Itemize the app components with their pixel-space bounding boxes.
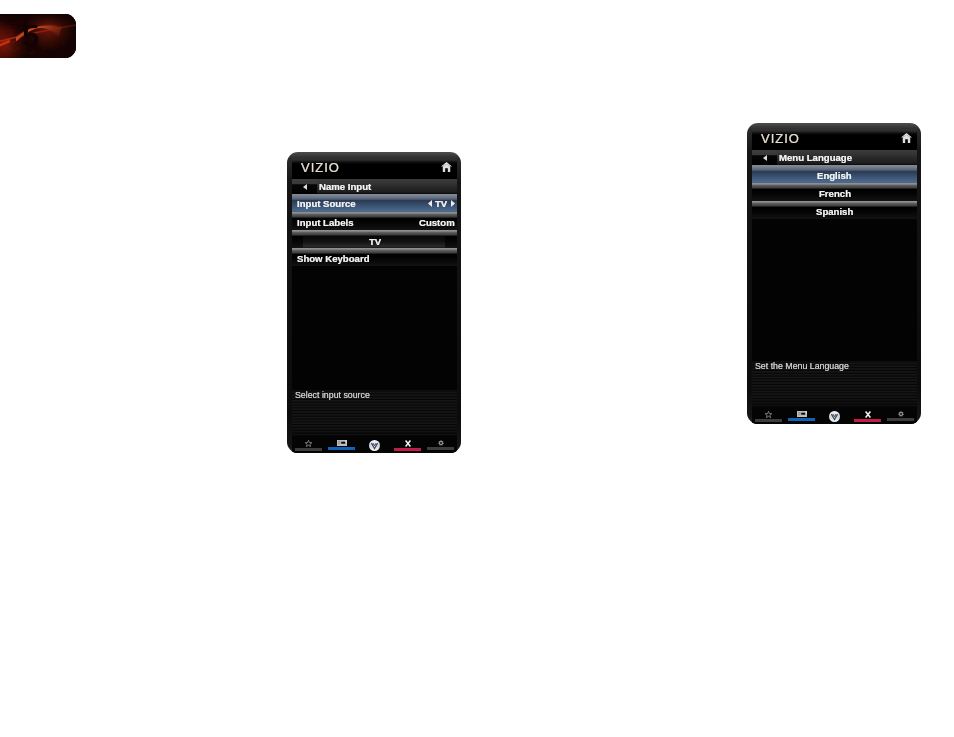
staticText: French: [819, 188, 851, 199]
button[interactable]: Favorites: [292, 436, 325, 453]
button[interactable]: Favorites: [752, 407, 785, 424]
staticText: Spanish: [816, 206, 854, 217]
staticText: Input Source: [297, 198, 356, 209]
button[interactable]: Close: [391, 436, 424, 453]
button[interactable]: Spanish: [752, 207, 917, 219]
button[interactable]: Home: [440, 160, 453, 173]
staticText: Show Keyboard: [297, 253, 370, 264]
staticText: 5: [22, 19, 40, 54]
staticText: Name Input: [319, 181, 372, 192]
button[interactable]: Settings: [884, 407, 917, 424]
staticText: VIZIO: [761, 131, 800, 146]
button[interactable]: Settings: [424, 436, 457, 453]
staticText: Set the Menu Language: [755, 361, 849, 371]
button[interactable]: Close: [851, 407, 884, 424]
staticText: TV: [435, 198, 448, 209]
staticText: Menu Language: [779, 152, 853, 163]
button[interactable]: French: [752, 189, 917, 201]
staticText: VIZIO: [301, 160, 340, 175]
button[interactable]: Input Labels: [292, 218, 457, 230]
staticText: English: [817, 170, 852, 181]
button[interactable]: VIZIO menu: [818, 407, 851, 424]
staticText: Select input source: [295, 390, 370, 400]
button[interactable]: Home: [900, 131, 913, 144]
button[interactable]: Show Keyboard: [292, 254, 457, 266]
button[interactable]: Input Source: [292, 194, 457, 212]
button[interactable]: Input: [785, 407, 818, 424]
button[interactable]: Input: [325, 436, 358, 453]
staticText: TV: [369, 236, 382, 247]
staticText: Custom: [419, 217, 455, 228]
button[interactable]: Back: [752, 150, 777, 165]
button[interactable]: TV: [303, 236, 445, 248]
button[interactable]: TV: [292, 236, 457, 248]
button[interactable]: Back: [292, 179, 317, 194]
button[interactable]: English: [752, 165, 917, 183]
button[interactable]: VIZIO menu: [358, 436, 391, 453]
staticText: Input Labels: [297, 217, 354, 228]
button[interactable]: Channel 5 logo: [0, 14, 76, 58]
